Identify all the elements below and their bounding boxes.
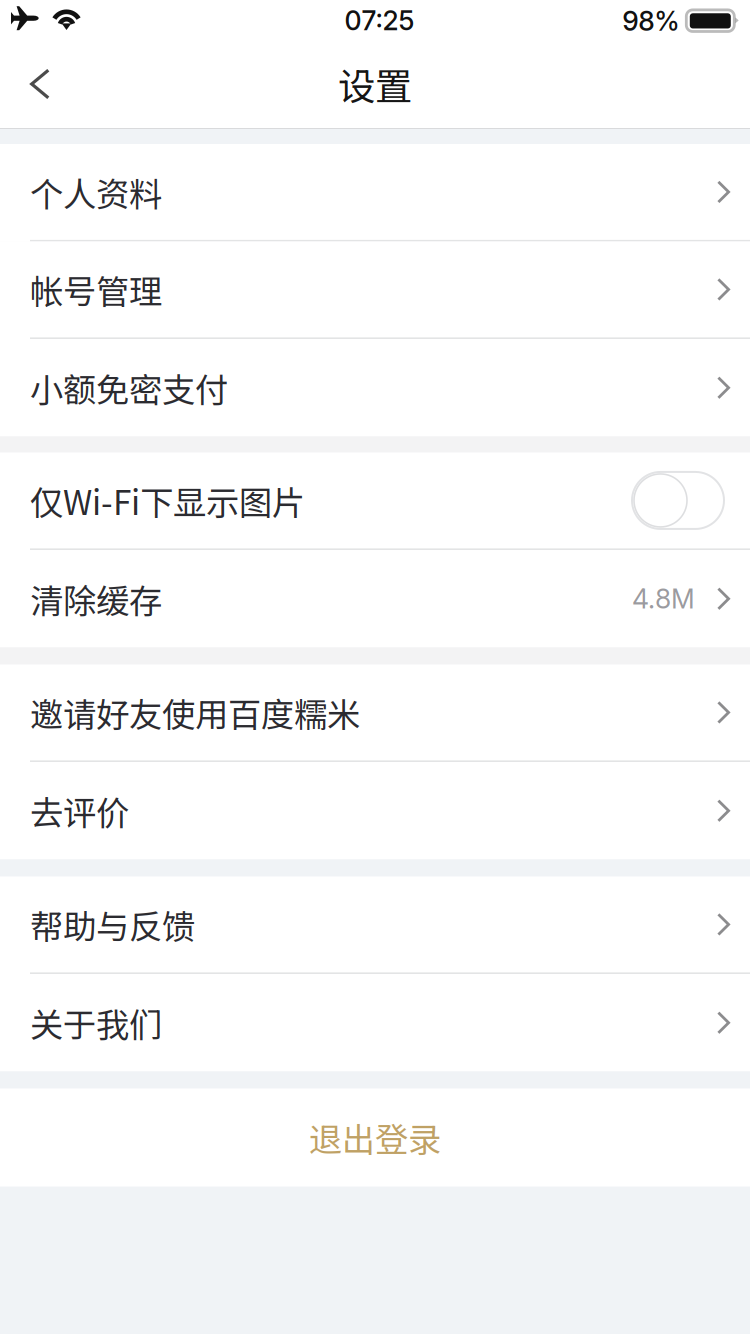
staticText: 邀请好友使用百度糯米 [30,688,360,737]
button[interactable]: 小额免密支付 [0,339,750,436]
staticText: 去评价 [30,787,129,835]
staticText: 退出登录 [309,1113,441,1162]
button[interactable]: 帮助与反馈 [0,876,750,974]
button[interactable]: 仅Wi-Fi下显示图片 [0,452,750,550]
button[interactable]: 邀请好友使用百度糯米 [0,664,750,762]
staticText: 4.8M [632,583,695,615]
staticText: 帮助与反馈 [30,900,195,949]
staticText: 07:25 [344,4,414,37]
button[interactable]: 退出登录 [0,1088,750,1186]
staticText: 设置 [338,57,412,111]
button[interactable]: 关于我们 [0,974,750,1071]
button[interactable]: 个人资料 [0,144,750,241]
button[interactable]: Back [0,40,100,128]
staticText: 小额免密支付 [30,364,228,412]
staticText: 帐号管理 [30,265,162,314]
button[interactable]: 去评价 [0,762,750,859]
staticText: 清除缓存 [30,575,162,623]
staticText: 关于我们 [30,999,162,1047]
staticText: 个人资料 [30,168,162,216]
button[interactable]: 清除缓存 [0,550,750,647]
button[interactable]: 帐号管理 [0,241,750,339]
staticText: 98% [622,5,679,37]
staticText: 仅Wi-Fi下显示图片 [30,476,305,525]
